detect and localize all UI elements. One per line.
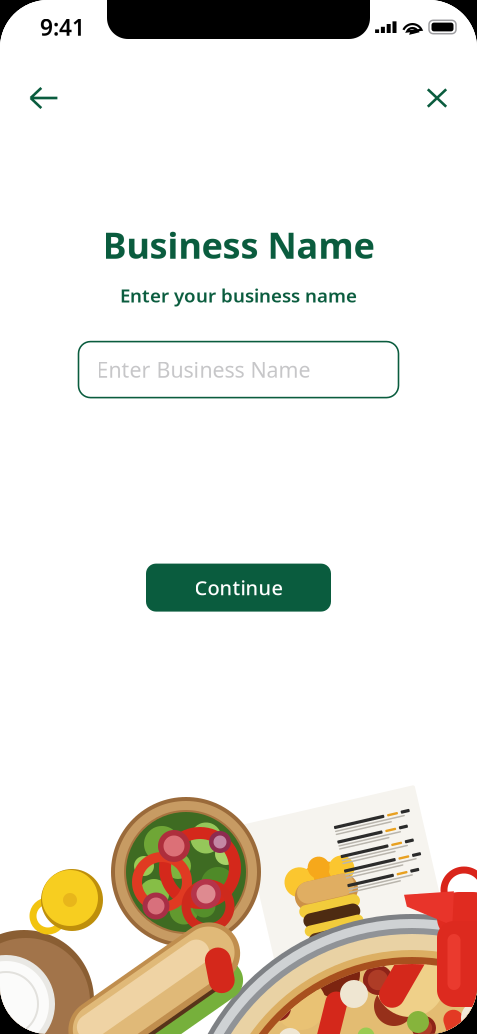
staticText: Continue	[194, 574, 282, 601]
staticText: 9:41	[40, 12, 85, 42]
button[interactable]: Back	[18, 73, 70, 123]
button[interactable]: Close	[414, 73, 460, 123]
staticText: BU	[264, 934, 306, 973]
staticText: Enter your business name	[120, 283, 357, 308]
staticText: Enter Business Name	[96, 355, 310, 384]
button[interactable]: Enter Business Name	[78, 342, 398, 398]
staticText: Business Name	[102, 221, 374, 269]
button[interactable]: Continue	[146, 564, 331, 612]
